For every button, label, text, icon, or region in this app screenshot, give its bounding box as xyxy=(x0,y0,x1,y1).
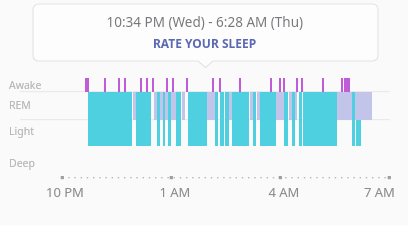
button[interactable]: Sleep stages chart xyxy=(0,70,408,180)
button[interactable] xyxy=(33,4,378,61)
